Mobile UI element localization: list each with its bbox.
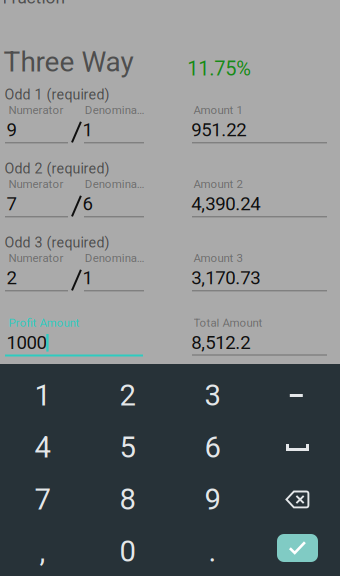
button[interactable]: 7	[0, 473, 85, 525]
staticText: 1	[83, 119, 93, 141]
button[interactable]: 1	[0, 369, 85, 421]
staticText: Amount 1	[193, 103, 242, 117]
staticText: 9	[204, 482, 220, 517]
staticText: Odd 1 (required)	[5, 86, 110, 103]
staticText: ,	[39, 534, 45, 569]
staticText: 4,390.24	[191, 193, 260, 215]
staticText: 1	[34, 378, 50, 413]
staticText: Odd 3 (required)	[5, 234, 110, 251]
staticText: 7	[6, 193, 16, 215]
staticText: 0	[119, 534, 135, 569]
staticText: 8,512.2	[191, 332, 250, 354]
staticText: 6	[204, 430, 220, 465]
button[interactable]: 2	[85, 369, 170, 421]
staticText: Total Amount	[193, 316, 262, 329]
staticText: Numerator	[9, 177, 64, 191]
staticText: Denomina…	[85, 251, 145, 265]
staticText: 1000	[6, 332, 46, 354]
staticText: 3,170.73	[191, 267, 260, 289]
staticText: Numerator	[9, 103, 64, 117]
staticText: 3	[204, 378, 220, 413]
button[interactable]: 5	[85, 421, 170, 473]
button[interactable]: 9	[170, 473, 255, 525]
staticText: Fraction	[2, 0, 65, 8]
staticText: 1	[83, 267, 93, 289]
staticText: 951.22	[191, 119, 246, 141]
staticText: Amount 2	[193, 177, 242, 191]
staticText: 2	[119, 378, 135, 413]
staticText: 7	[34, 482, 50, 517]
staticText: 2	[6, 267, 16, 289]
staticText: Profit Amount	[9, 316, 80, 329]
button[interactable]: Done	[255, 525, 340, 576]
staticText: 4	[34, 430, 50, 465]
button[interactable]: 6	[170, 421, 255, 473]
button[interactable]: ,	[0, 525, 85, 576]
staticText: 6	[83, 193, 93, 215]
staticText: Three Way	[3, 46, 133, 78]
staticText: 8	[119, 482, 135, 517]
staticText: 11.75%	[187, 57, 251, 80]
button[interactable]: Minus	[255, 369, 340, 421]
staticText: Odd 2 (required)	[5, 160, 110, 177]
staticText: .	[208, 534, 216, 569]
staticText: 5	[119, 430, 135, 465]
button[interactable]: 8	[85, 473, 170, 525]
staticText: Denomina…	[85, 177, 145, 191]
staticText: Denomina…	[85, 103, 145, 117]
button[interactable]: .	[170, 525, 255, 576]
button[interactable]: 3	[170, 369, 255, 421]
button[interactable]: 0	[85, 525, 170, 576]
staticText: 9	[6, 119, 16, 141]
button[interactable]: 4	[0, 421, 85, 473]
staticText: Amount 3	[193, 251, 242, 265]
button[interactable]: Space	[255, 421, 340, 473]
button[interactable]: Backspace	[255, 473, 340, 525]
staticText: Numerator	[9, 251, 64, 265]
